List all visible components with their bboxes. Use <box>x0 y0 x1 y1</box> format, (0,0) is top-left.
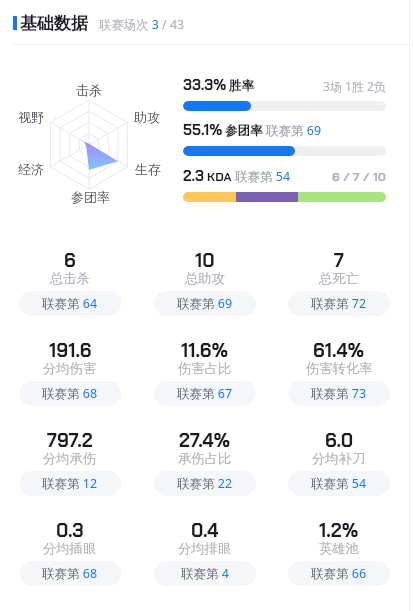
button[interactable]: 191.6 <box>10 338 130 428</box>
button[interactable]: 7 <box>279 248 399 338</box>
staticText: 797.2 <box>47 428 93 453</box>
staticText: 联赛第 12 <box>42 475 98 492</box>
staticText: 33.3% <box>183 75 227 95</box>
staticText: 7 <box>334 248 344 273</box>
button[interactable]: 6.0 <box>279 428 399 518</box>
staticText: KDA <box>207 169 232 185</box>
staticText: 助攻 <box>134 109 160 125</box>
staticText: 55.1% <box>183 120 223 140</box>
staticText: 分均补刀 <box>312 450 366 467</box>
staticText: 2.3 <box>183 166 205 186</box>
staticText: 联赛第 22 <box>177 475 233 492</box>
staticText: 英雄池 <box>319 540 359 557</box>
staticText: 联赛第 64 <box>42 295 98 312</box>
button[interactable]: 0.4 <box>145 518 265 608</box>
staticText: 联赛第 72 <box>311 295 367 312</box>
staticText: 胜率 <box>229 78 254 94</box>
button[interactable]: 797.2 <box>10 428 130 518</box>
staticText: 191.6 <box>49 338 92 363</box>
staticText: 参团率 <box>225 123 263 139</box>
button[interactable]: 11.6% <box>145 338 265 428</box>
staticText: 分均承伤 <box>43 450 97 467</box>
button[interactable]: 0.3 <box>10 518 130 608</box>
staticText: 1.2% <box>319 518 359 543</box>
staticText: 联赛第 69 <box>266 122 322 139</box>
staticText: 伤害占比 <box>178 360 232 377</box>
staticText: 联赛场次 3 / 43 <box>99 16 185 33</box>
staticText: 联赛第 68 <box>42 385 98 402</box>
staticText: 生存 <box>135 161 161 177</box>
button[interactable]: 6 <box>10 248 130 338</box>
button[interactable]: 27.4% <box>145 428 265 518</box>
staticText: 总死亡 <box>319 270 359 287</box>
button[interactable]: 1.2% <box>279 518 399 608</box>
staticText: 10 <box>195 248 215 273</box>
staticText: 6 <box>64 248 76 273</box>
staticText: 分均伤害 <box>43 360 97 377</box>
staticText: 联赛第 73 <box>311 385 367 402</box>
staticText: 6 / 7 / 10 <box>332 169 386 185</box>
staticText: 联赛第 54 <box>311 475 367 492</box>
staticText: 经济 <box>18 161 44 177</box>
staticText: 3场 1胜 2负 <box>323 78 386 94</box>
staticText: 基础数据 <box>20 13 88 34</box>
staticText: 联赛第 69 <box>177 295 233 312</box>
staticText: 分均排眼 <box>178 540 232 557</box>
staticText: 参团率 <box>71 189 110 205</box>
staticText: 总助攻 <box>185 270 225 287</box>
staticText: 联赛第 54 <box>235 168 291 185</box>
staticText: 伤害转化率 <box>306 360 373 377</box>
staticText: 总击杀 <box>50 270 90 287</box>
staticText: 11.6% <box>181 338 229 363</box>
staticText: 联赛第 67 <box>177 385 233 402</box>
staticText: 61.4% <box>313 338 365 363</box>
staticText: 分均插眼 <box>43 540 97 557</box>
staticText: 承伤占比 <box>178 450 232 467</box>
staticText: 联赛第 4 <box>181 565 229 582</box>
button[interactable]: 10 <box>145 248 265 338</box>
staticText: 0.3 <box>56 518 84 543</box>
staticText: 27.4% <box>179 428 231 453</box>
staticText: 0.4 <box>191 518 219 543</box>
staticText: 视野 <box>18 109 44 125</box>
staticText: 联赛第 66 <box>311 565 367 582</box>
button[interactable]: 61.4% <box>279 338 399 428</box>
staticText: 击杀 <box>76 82 102 98</box>
staticText: 联赛第 68 <box>42 565 98 582</box>
staticText: 6.0 <box>325 428 354 453</box>
